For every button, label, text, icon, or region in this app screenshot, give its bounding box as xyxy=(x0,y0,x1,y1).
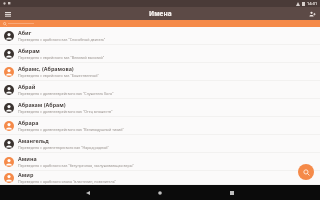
staticText: Переведено с арабского как "безупречная,… xyxy=(18,163,134,168)
button[interactable]: Search xyxy=(0,20,320,27)
button[interactable]: Абрахам (Абрам) xyxy=(0,99,320,117)
button[interactable]: Back xyxy=(52,185,124,200)
staticText: Амир xyxy=(18,171,34,178)
button[interactable]: Абрай xyxy=(0,81,320,99)
button[interactable]: Menu xyxy=(3,9,13,19)
staticText: Переведено с еврейского как "Великий выс… xyxy=(18,55,105,60)
staticText: Имена xyxy=(149,9,172,18)
staticText: Амина xyxy=(18,155,37,162)
button[interactable]: Амир xyxy=(0,171,320,185)
button[interactable]: Add contact xyxy=(307,9,317,19)
staticText: Амангельд xyxy=(18,137,49,144)
button[interactable]: Амангельд xyxy=(0,135,320,153)
staticText: Переведено с арабского языка "властелин,… xyxy=(18,179,116,184)
button[interactable]: Recent apps xyxy=(196,185,268,200)
button[interactable]: Абирам xyxy=(0,45,320,63)
staticText: Переведено с еврейского как "Божественны… xyxy=(18,73,99,78)
staticText: Переведено с арабского как "Способный дв… xyxy=(18,37,106,42)
button[interactable]: Абрамс, (Абрамова) xyxy=(0,63,320,81)
staticText: Переведено с древнетюркского как "Народ … xyxy=(18,145,110,150)
staticText: Абрай xyxy=(18,83,36,90)
staticText: Абрамс, (Абрамова) xyxy=(18,65,74,72)
staticText: Абрахам (Абрам) xyxy=(18,101,66,108)
button[interactable]: Абрара xyxy=(0,117,320,135)
button[interactable]: Амина xyxy=(0,153,320,171)
staticText: Абирам xyxy=(18,47,40,54)
staticText: Переведено с древнееврейского как "Отец … xyxy=(18,109,113,114)
staticText: Переведено с древнееврейского как "Велик… xyxy=(18,127,124,132)
button[interactable]: Search xyxy=(298,164,314,180)
staticText: Абиг xyxy=(18,29,32,36)
staticText: Абрара xyxy=(18,119,39,126)
staticText: Переведено с древнееврейского как "Служи… xyxy=(18,91,114,96)
button[interactable]: Home xyxy=(124,185,196,200)
button[interactable]: Абиг xyxy=(0,27,320,45)
staticText: 14:01 xyxy=(307,1,318,6)
